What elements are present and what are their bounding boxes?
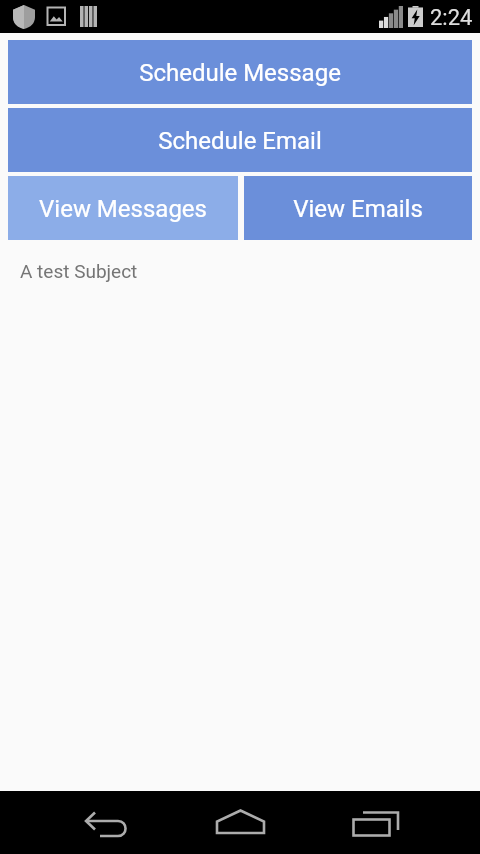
button[interactable]: View Emails (244, 176, 472, 240)
staticText: Schedule Email (158, 127, 322, 155)
staticText: 2:24 (430, 5, 473, 31)
button[interactable]: Home (207, 809, 277, 854)
button[interactable]: Back (74, 809, 144, 854)
button[interactable]: Recent apps (343, 809, 413, 854)
staticText: Schedule Message (139, 59, 341, 87)
button[interactable]: Schedule Message (8, 40, 472, 104)
button[interactable]: Schedule Email (8, 108, 472, 172)
staticText: View Emails (293, 195, 423, 223)
staticText: View Messages (39, 195, 207, 223)
staticText: A test Subject (20, 260, 138, 282)
button[interactable]: View Messages (8, 176, 238, 240)
